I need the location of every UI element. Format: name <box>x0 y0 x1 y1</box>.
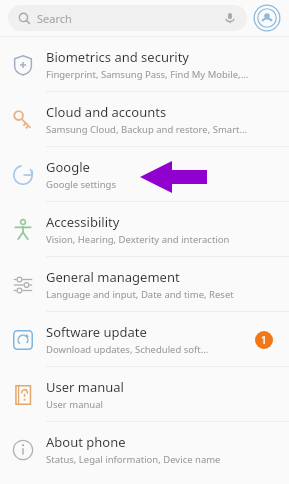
button[interactable]: Voice search <box>223 11 237 25</box>
button[interactable]: Cloud and accounts <box>0 92 289 147</box>
staticText: General management <box>46 268 180 286</box>
staticText: Vision, Hearing, Dexterity and interacti… <box>46 233 230 246</box>
staticText: Google settings <box>46 178 117 191</box>
button[interactable]: Biometrics and security <box>0 37 289 92</box>
staticText: 1 <box>261 333 267 347</box>
button[interactable]: Google <box>0 147 289 202</box>
staticText: About phone <box>46 433 126 451</box>
staticText: Biometrics and security <box>46 48 190 66</box>
staticText: User manual <box>46 378 124 396</box>
button[interactable]: About phone <box>0 422 289 477</box>
button[interactable]: User manual <box>0 367 289 422</box>
staticText: Language and input, Date and time, Reset <box>46 288 234 301</box>
staticText: Software update <box>46 323 147 341</box>
button[interactable]: Software update <box>0 312 289 367</box>
staticText: Download updates, Scheduled soft... <box>46 343 209 356</box>
button[interactable]: Account <box>253 4 281 32</box>
staticText: Google <box>46 158 90 176</box>
button[interactable]: Search <box>8 5 247 31</box>
staticText: Search <box>37 11 72 26</box>
staticText: Fingerprint, Samsung Pass, Find My Mobil… <box>46 68 249 81</box>
button[interactable]: General management <box>0 257 289 312</box>
staticText: Accessibility <box>46 213 120 231</box>
staticText: Status, Legal information, Device name <box>46 453 221 466</box>
button[interactable]: Accessibility <box>0 202 289 257</box>
staticText: Cloud and accounts <box>46 103 167 121</box>
staticText: Samsung Cloud, Backup and restore, Smart… <box>46 123 248 136</box>
staticText: User manual <box>46 398 103 411</box>
